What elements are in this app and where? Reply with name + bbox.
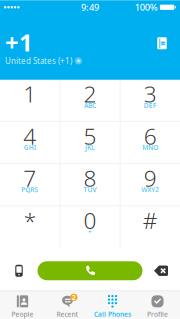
button[interactable]: 9 <box>120 164 180 206</box>
staticText: 5 <box>83 121 96 151</box>
staticText: * <box>24 205 36 235</box>
staticText: MNO <box>142 143 158 152</box>
staticText: Recent <box>56 310 78 319</box>
button[interactable]: Delete <box>142 256 179 286</box>
staticText: Profile <box>147 310 168 319</box>
button[interactable]: Mobile <box>0 256 37 286</box>
staticText: 2 <box>72 293 76 302</box>
staticText: DEF <box>144 101 157 110</box>
staticText: + <box>88 227 92 236</box>
button[interactable]: # <box>120 206 180 248</box>
button[interactable]: 3 <box>120 80 180 121</box>
staticText: 3 <box>144 79 157 109</box>
staticText: 4 <box>23 121 36 151</box>
button[interactable]: People <box>0 291 45 319</box>
staticText: PQRS <box>21 185 38 194</box>
staticText: 9:49 <box>81 1 99 13</box>
staticText: 0 <box>83 205 96 235</box>
staticText: United States (+1) <box>5 56 72 66</box>
staticText: 8 <box>83 163 96 193</box>
staticText: 9 <box>144 163 157 193</box>
staticText: # <box>143 205 158 235</box>
button[interactable]: 2 <box>60 80 120 121</box>
staticText: 7 <box>23 163 36 193</box>
button[interactable]: 2 <box>45 291 90 319</box>
button[interactable]: Contacts <box>151 32 173 54</box>
staticText: WXYZ <box>141 185 159 194</box>
staticText: JKL <box>85 143 95 152</box>
button[interactable]: 0 <box>60 206 120 248</box>
staticText: 6 <box>144 121 157 151</box>
button[interactable]: 1 <box>0 80 60 121</box>
staticText: TUV <box>83 185 96 194</box>
staticText: ABC <box>84 101 96 110</box>
staticText: +1 <box>5 26 33 58</box>
button[interactable]: * <box>0 206 60 248</box>
button[interactable]: 4 <box>0 122 60 163</box>
button[interactable]: 7 <box>0 164 60 206</box>
staticText: 100% <box>135 1 158 13</box>
staticText <box>29 101 31 110</box>
staticText <box>149 227 151 236</box>
staticText: Call Phones <box>94 310 131 319</box>
staticText: 2 <box>83 79 96 109</box>
button[interactable]: 5 <box>60 122 120 163</box>
button[interactable]: Call <box>37 261 142 280</box>
staticText: 1 <box>23 79 36 109</box>
button[interactable]: Call Phones <box>90 291 135 319</box>
button[interactable]: 8 <box>60 164 120 206</box>
staticText: People <box>11 310 33 319</box>
staticText: GHI <box>24 143 36 152</box>
button[interactable]: Profile <box>135 291 180 319</box>
button[interactable]: 6 <box>120 122 180 163</box>
